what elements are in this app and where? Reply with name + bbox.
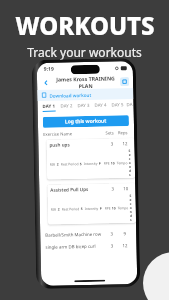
staticText: Rest Period [62, 206, 80, 210]
staticText: Seconds [129, 193, 133, 221]
staticText: Tempo [118, 205, 129, 209]
staticText: 2 [58, 207, 60, 211]
staticText: DAY 2 [60, 102, 73, 108]
staticText: DAY 5 [111, 101, 124, 107]
staticText: James Kross TRAINING PLAN [51, 74, 120, 90]
staticText: Exercise Name [43, 131, 103, 138]
button[interactable]: Log this workout [43, 115, 129, 128]
button[interactable]: DAY 5 [108, 99, 126, 113]
button[interactable]: DAY 1 [40, 101, 58, 114]
staticText: Download workout [49, 92, 91, 99]
button[interactable]: Assisted Pull Ups [47, 183, 136, 225]
staticText: Seconds [128, 148, 132, 176]
staticText: 10 [111, 160, 115, 164]
staticText: RIR [51, 207, 57, 211]
staticText: 5 [81, 206, 83, 210]
button[interactable]: DAY 3 [74, 100, 92, 113]
staticText: WORKOUTS [15, 9, 155, 42]
staticText: 2 [57, 162, 59, 166]
staticText: Rest Period [61, 161, 79, 165]
staticText: 10 [112, 205, 116, 209]
staticText: 10 [119, 185, 132, 191]
button[interactable]: single arm DB bicep curl [40, 242, 137, 250]
staticText: 9 [118, 230, 131, 236]
button[interactable]: Download workout [37, 88, 133, 101]
staticText: 12 [118, 140, 131, 146]
staticText: P [100, 206, 103, 210]
button[interactable]: Edit plan [120, 77, 129, 86]
staticText: DAY 1 [42, 103, 56, 109]
staticText: RPE [104, 160, 110, 165]
button[interactable]: push ups [46, 138, 135, 180]
staticText: DA [126, 101, 133, 107]
staticText: Barbell/Smith Machine row [45, 231, 105, 238]
staticText: Reps [116, 130, 129, 136]
staticText: single arm DB bicep curl [45, 243, 106, 250]
staticText: RIR [50, 162, 56, 166]
staticText: Assisted Pull Ups [50, 186, 106, 193]
staticText: 5 [80, 161, 82, 165]
staticText: 3 [105, 140, 118, 147]
staticText: RPE [105, 205, 111, 210]
staticText: DAY 3 [77, 102, 90, 108]
staticText: Tempo [117, 160, 128, 164]
staticText: 9:19 [44, 66, 54, 73]
staticText: 3 [105, 242, 119, 249]
button[interactable]: Barbell/Smith Machine row [40, 230, 136, 238]
staticText: Intensity [85, 206, 99, 210]
staticText: Log this workout [65, 118, 107, 125]
staticText: push ups [49, 141, 105, 148]
staticText: Track your workouts [27, 44, 142, 60]
staticText: Sets [103, 130, 116, 137]
staticText: 12 [118, 242, 131, 248]
staticText: 3 [106, 185, 119, 192]
button[interactable]: Back [41, 78, 51, 88]
staticText: 3 [105, 230, 118, 237]
staticText: Intensity [84, 161, 98, 165]
staticText: DAY 4 [94, 102, 107, 108]
staticText: P [99, 161, 102, 165]
button[interactable]: DAY 2 [57, 100, 75, 114]
button[interactable]: DAY 4 [91, 99, 109, 113]
button[interactable]: DA [125, 99, 134, 112]
